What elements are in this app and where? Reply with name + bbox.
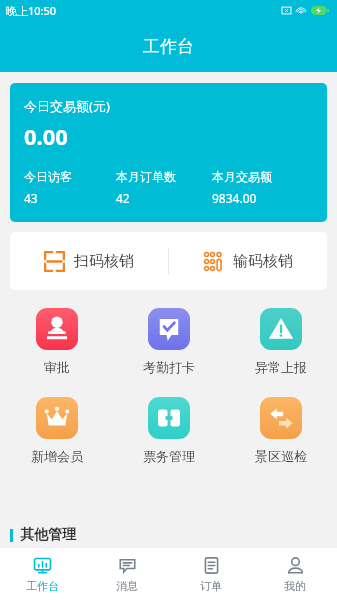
staticText: 景区巡检 bbox=[255, 448, 307, 464]
staticText: 异常上报 bbox=[255, 359, 307, 375]
button[interactable]: 新增会员 bbox=[0, 393, 113, 468]
staticText: 新增会员 bbox=[31, 448, 83, 464]
staticText: 工作台 bbox=[26, 579, 59, 593]
staticText: 9834.00 bbox=[212, 190, 257, 206]
button[interactable]: 审批 bbox=[0, 304, 113, 379]
staticText: 今日交易额(元) bbox=[24, 97, 110, 115]
staticText: 0.00 bbox=[24, 121, 68, 151]
button[interactable]: 考勤打卡 bbox=[113, 304, 225, 379]
staticText: 本月交易额 bbox=[212, 169, 272, 184]
staticText: 工作台 bbox=[143, 36, 194, 57]
button[interactable]: 异常上报 bbox=[225, 304, 337, 379]
button[interactable]: 扫码核销 bbox=[10, 232, 168, 290]
button[interactable]: 订单 bbox=[169, 548, 253, 600]
button[interactable]: 今日交易额(元) bbox=[10, 83, 327, 222]
staticText: 今日访客 bbox=[24, 169, 72, 184]
staticText: 审批 bbox=[44, 359, 70, 375]
button[interactable]: 输码核销 bbox=[169, 232, 327, 290]
staticText: 输码核销 bbox=[233, 252, 293, 271]
staticText: 扫码核销 bbox=[74, 252, 134, 271]
button[interactable]: 我的 bbox=[253, 548, 337, 600]
button[interactable]: 消息 bbox=[85, 548, 169, 600]
staticText: 本月订单数 bbox=[116, 169, 176, 184]
staticText: 考勤打卡 bbox=[143, 359, 195, 375]
staticText: 我的 bbox=[284, 579, 306, 593]
button[interactable]: 票务管理 bbox=[113, 393, 225, 468]
button[interactable]: 工作台 bbox=[0, 548, 85, 600]
staticText: 票务管理 bbox=[143, 448, 195, 464]
staticText: 43 bbox=[24, 190, 38, 206]
staticText: 消息 bbox=[116, 579, 138, 593]
staticText: 订单 bbox=[200, 579, 222, 593]
staticText: 晚上10:50 bbox=[6, 3, 57, 18]
button[interactable]: 景区巡检 bbox=[225, 393, 337, 468]
staticText: 42 bbox=[116, 190, 130, 206]
staticText: 其他管理 bbox=[20, 526, 76, 544]
